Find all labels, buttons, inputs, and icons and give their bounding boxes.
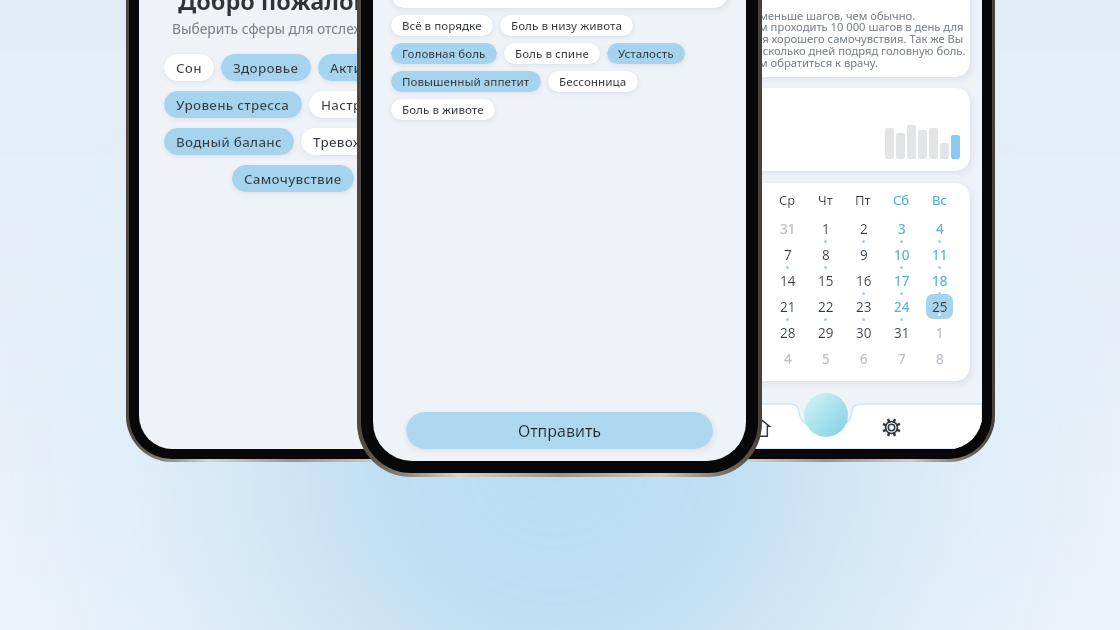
button[interactable]: Самочувствие (232, 165, 354, 192)
button[interactable]: 3 (736, 346, 763, 371)
staticText: 16 (856, 272, 872, 290)
button[interactable]: Сон (164, 54, 214, 81)
button[interactable]: 15 (812, 268, 839, 293)
staticText: Повышенный аппетит (402, 74, 530, 90)
button[interactable]: Всё в порядке (391, 15, 493, 36)
button[interactable]: 18 (926, 268, 953, 293)
button[interactable]: 31 (774, 216, 801, 241)
button[interactable]: 5 (812, 346, 839, 371)
staticText: 31 (894, 324, 910, 342)
button[interactable]: 7 (774, 242, 801, 267)
staticText: Сб (893, 191, 910, 209)
button[interactable]: 11 (926, 242, 953, 267)
button[interactable]: 30 (736, 216, 763, 241)
staticText: 8 (822, 246, 830, 264)
button[interactable]: 31 (888, 320, 915, 345)
button[interactable]: 7 (888, 346, 915, 371)
staticText: 4 (936, 220, 944, 238)
staticText: Боль в животе (402, 102, 484, 118)
button[interactable]: 16 (850, 268, 877, 293)
button[interactable]: 9 (850, 242, 877, 267)
button[interactable]: 13 (736, 268, 763, 293)
staticText: Добро пожаловать (139, 0, 446, 17)
button[interactable]: Здоровье (221, 54, 311, 81)
button[interactable]: 29 (812, 320, 839, 345)
button[interactable]: Боль в низу живота (500, 15, 633, 36)
staticText: 27 (742, 324, 758, 342)
button[interactable]: 8 (926, 346, 953, 371)
staticText: Выберить сферы для отслеживания (139, 19, 446, 38)
button[interactable]: 21 (774, 294, 801, 319)
button[interactable]: Уровень стресса (164, 91, 302, 118)
button[interactable]: Активность (318, 54, 421, 81)
button[interactable]: 25 (926, 294, 953, 319)
staticText: 7 (898, 350, 906, 368)
button[interactable]: Настроение (309, 91, 415, 118)
staticText: 28 (780, 324, 796, 342)
staticText: 2 (860, 220, 868, 238)
button[interactable]: 20 (736, 294, 763, 319)
button[interactable]: 14 (774, 268, 801, 293)
button[interactable]: 17 (888, 268, 915, 293)
button[interactable]: Бессонница (548, 71, 638, 92)
staticText: Вс (932, 191, 947, 209)
staticText: 23 (856, 298, 872, 316)
staticText: Усталость (618, 46, 674, 62)
staticText: Сон (176, 59, 202, 77)
button[interactable]: 6 (850, 346, 877, 371)
button[interactable]: Головная боль (391, 43, 497, 64)
staticText: 22 (818, 298, 834, 316)
staticText: 9 (860, 246, 868, 264)
button[interactable]: 8 (812, 242, 839, 267)
button[interactable]: 24 (888, 294, 915, 319)
button[interactable]: 28 (774, 320, 801, 345)
button[interactable]: Отправить (406, 412, 713, 449)
button[interactable]: 22 (812, 294, 839, 319)
button[interactable]: Боль в животе (391, 99, 495, 120)
button[interactable]: 1 (812, 216, 839, 241)
staticText: 11 (932, 246, 948, 264)
staticText: 3 (898, 220, 906, 238)
button[interactable]: Home (746, 413, 774, 441)
staticText: Водный баланс (176, 133, 282, 151)
button[interactable]: Тревожность (301, 128, 415, 155)
button[interactable]: Боль в спине (504, 43, 600, 64)
button[interactable]: 27 (736, 320, 763, 345)
button[interactable]: 4 (774, 346, 801, 371)
staticText: Вы прошли меньше шагов, чем обычно. Реко… (694, 8, 966, 70)
staticText: Бессонница (559, 74, 627, 90)
button[interactable]: Водный баланс (164, 128, 294, 155)
button[interactable]: Settings (877, 413, 905, 441)
button[interactable]: Повышенный аппетит (391, 71, 541, 92)
button[interactable]: 23 (850, 294, 877, 319)
button[interactable]: 2 (850, 216, 877, 241)
staticText: Тревожность (313, 133, 403, 151)
button[interactable]: Add entry (804, 393, 848, 437)
staticText: Отправить (518, 420, 602, 442)
button[interactable]: 10 (888, 242, 915, 267)
staticText: 13 (742, 272, 758, 290)
staticText: 7 (784, 246, 792, 264)
button[interactable]: Усталость (607, 43, 685, 64)
button[interactable]: 1 (926, 320, 953, 345)
button[interactable]: 30 (850, 320, 877, 345)
staticText: Здоровье (233, 59, 299, 77)
staticText: Всё в порядке (402, 18, 482, 34)
button[interactable]: 6 (736, 242, 763, 267)
staticText: Самочувствие (244, 170, 342, 188)
button[interactable]: 3 (888, 216, 915, 241)
button[interactable]: 4 (926, 216, 953, 241)
staticText: Настроение (321, 96, 403, 114)
staticText: Уровень стресса (176, 96, 290, 114)
